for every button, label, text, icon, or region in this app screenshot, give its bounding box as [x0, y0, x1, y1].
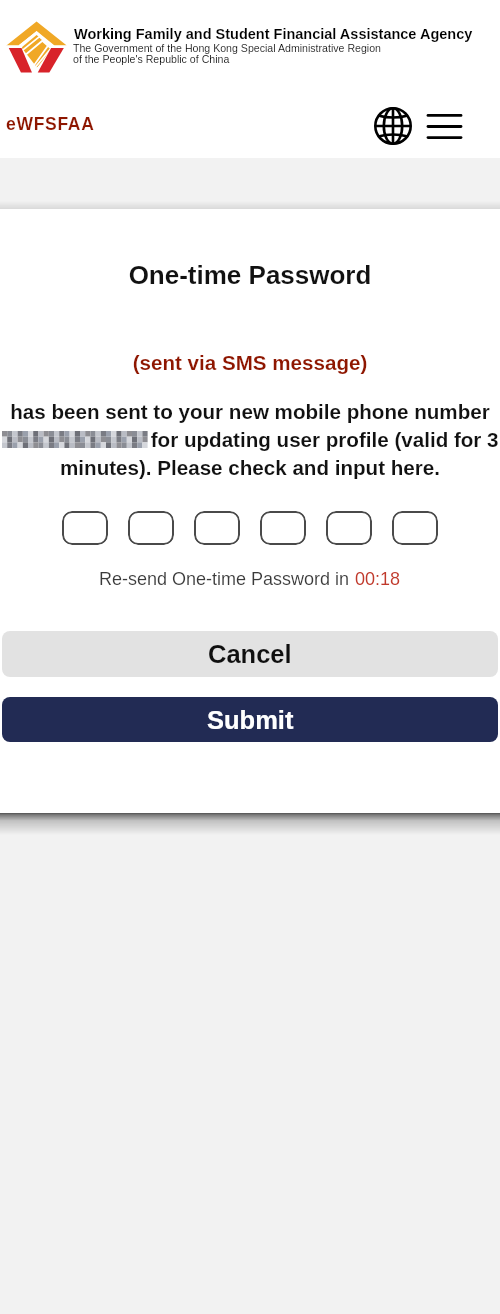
button[interactable]: Menu	[422, 104, 466, 148]
staticText: One-time Password	[0, 260, 500, 289]
staticText: Cancel	[208, 640, 292, 668]
button[interactable]: OTP digit	[62, 511, 108, 545]
staticText: minutes). Please check and input here.	[0, 456, 500, 479]
staticText: for updating user profile (valid for 3	[145, 428, 499, 451]
button[interactable]: OTP digit	[326, 511, 372, 545]
button[interactable]: eWFSFAA	[2, 108, 99, 140]
staticText: Submit	[207, 706, 294, 734]
staticText: Working Family and Student Financial Ass…	[74, 26, 473, 42]
staticText: (sent via SMS message)	[0, 351, 500, 374]
button[interactable]: Language	[371, 104, 415, 148]
button[interactable]: Submit	[2, 697, 498, 742]
staticText: Re-send One-time Password in	[99, 569, 355, 589]
button[interactable]: OTP digit	[392, 511, 438, 545]
staticText: has been sent to your new mobile phone n…	[0, 400, 500, 423]
staticText: The Government of the Hong Kong Special …	[73, 42, 381, 66]
staticText: 00:18	[355, 569, 401, 589]
button[interactable]: OTP digit	[128, 511, 174, 545]
button[interactable]: Cancel	[2, 631, 498, 677]
button[interactable]: OTP digit	[194, 511, 240, 545]
button[interactable]: OTP digit	[260, 511, 306, 545]
